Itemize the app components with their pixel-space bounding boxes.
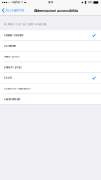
staticText: 09:41 — [48, 1, 53, 4]
button[interactable]: Zoom — [0, 73, 101, 83]
button[interactable]: Inverti colori — [0, 51, 101, 62]
button[interactable]: Scala di grigi — [0, 62, 101, 73]
button[interactable]: Controllo interruttori — [0, 83, 101, 94]
button[interactable]: Accesso Guidato — [0, 30, 101, 41]
staticText: 100% — [87, 1, 92, 4]
staticText: vodafone IT — [12, 1, 23, 4]
staticText: Abbreviazioni accessibilità — [34, 9, 78, 13]
button[interactable]: AssistiveTouch — [0, 94, 101, 105]
button[interactable]: Accessibilità — [0, 5, 26, 16]
staticText: FAI TRIPLO CLIC SUL TASTO HOME PER: — [4, 23, 47, 26]
staticText: Accesso Guidato — [4, 34, 24, 37]
staticText: Zoom — [4, 76, 12, 79]
staticText: Controllo interruttori — [4, 87, 31, 90]
staticText: Scala di grigi — [4, 66, 22, 69]
staticText: Inverti colori — [4, 55, 20, 58]
staticText: Accessibilità — [5, 9, 24, 12]
button[interactable]: VoiceOver — [0, 41, 101, 52]
staticText: VoiceOver — [4, 44, 16, 48]
staticText: AssistiveTouch — [4, 98, 20, 101]
